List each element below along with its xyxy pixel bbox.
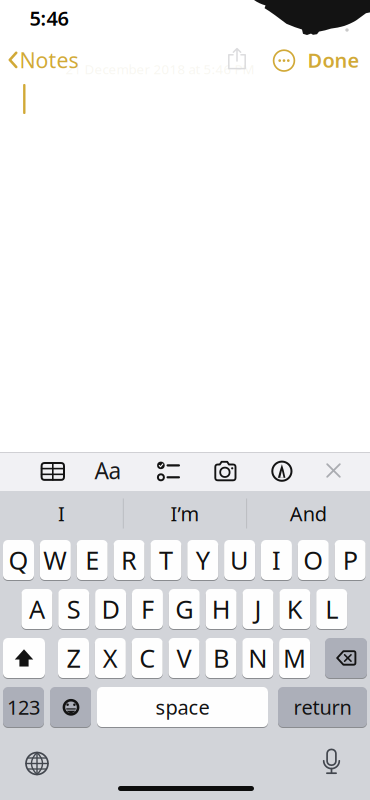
staticText: R (121, 543, 137, 577)
staticText: Notes (19, 46, 78, 74)
button[interactable]: Done (301, 45, 365, 75)
staticText: O (303, 543, 323, 577)
staticText: L (325, 592, 338, 626)
button[interactable]: A (21, 589, 52, 629)
staticText: 123 (7, 694, 40, 720)
button[interactable]: O (298, 540, 329, 580)
button[interactable] (3, 638, 45, 678)
button[interactable]: K (279, 589, 310, 629)
button[interactable]: L (316, 589, 347, 629)
button[interactable]: Notes (4, 43, 74, 77)
button[interactable] (205, 453, 245, 487)
staticText: M (283, 641, 306, 675)
button[interactable]: I (261, 540, 292, 580)
staticText: 5:46 (29, 5, 68, 31)
staticText: space (155, 694, 209, 720)
button[interactable]: Z (58, 638, 89, 678)
staticText: N (248, 641, 267, 675)
staticText: J (254, 592, 261, 626)
button[interactable]: T (150, 540, 181, 580)
button[interactable]: M (279, 638, 310, 678)
button[interactable]: And (247, 491, 369, 535)
staticText: T (159, 543, 173, 577)
button[interactable] (33, 453, 73, 487)
staticText: return (293, 694, 351, 720)
staticText: And (290, 500, 327, 527)
staticText: E (85, 543, 99, 577)
staticText: P (343, 543, 358, 577)
button[interactable]: G (169, 589, 200, 629)
button[interactable]: F (132, 589, 163, 629)
button[interactable] (325, 638, 367, 678)
button[interactable]: I’m (124, 491, 246, 535)
button[interactable]: C (132, 638, 163, 678)
button[interactable] (309, 740, 353, 784)
button[interactable]: V (169, 638, 200, 678)
staticText: Y (196, 543, 210, 577)
button[interactable]: I (1, 491, 123, 535)
staticText: K (287, 592, 303, 626)
button[interactable]: D (95, 589, 126, 629)
button[interactable]: Aa (88, 453, 128, 487)
button[interactable]: B (205, 638, 236, 678)
staticText: W (43, 543, 67, 577)
staticText: B (213, 641, 229, 675)
button[interactable] (144, 453, 184, 487)
staticText: Q (8, 543, 28, 577)
staticText: G (175, 592, 193, 626)
staticText: Z (66, 641, 80, 675)
staticText: S (67, 592, 81, 626)
button[interactable]: Y (187, 540, 218, 580)
button[interactable]: N (242, 638, 273, 678)
button[interactable] (221, 44, 253, 76)
button[interactable]: J (242, 589, 273, 629)
button[interactable]: 123 (3, 687, 44, 727)
button[interactable]: return (278, 687, 367, 727)
staticText: U (230, 543, 249, 577)
button[interactable]: W (40, 540, 71, 580)
button[interactable]: S (58, 589, 89, 629)
button[interactable] (316, 453, 350, 487)
button[interactable] (50, 687, 91, 727)
button[interactable]: U (224, 540, 255, 580)
staticText: H (212, 592, 231, 626)
staticText: X (103, 641, 118, 675)
button[interactable]: Q (3, 540, 34, 580)
button[interactable]: space (97, 687, 268, 727)
staticText: I’m (170, 500, 199, 527)
button[interactable]: R (114, 540, 145, 580)
staticText: Done (307, 47, 359, 73)
button[interactable]: H (206, 589, 237, 629)
staticText: D (102, 592, 120, 626)
button[interactable] (15, 741, 59, 785)
staticText: V (177, 641, 192, 675)
button[interactable]: X (95, 638, 126, 678)
button[interactable] (268, 45, 300, 77)
staticText: Aa (94, 455, 121, 485)
button[interactable]: P (335, 540, 366, 580)
staticText: I (58, 500, 65, 527)
staticText: C (139, 641, 155, 675)
staticText: 21 December 2018 at 5:46 PM (65, 60, 254, 78)
staticText: F (141, 592, 154, 626)
button[interactable] (262, 454, 302, 488)
button[interactable]: E (77, 540, 108, 580)
staticText: I (272, 543, 281, 577)
staticText: A (29, 592, 45, 626)
